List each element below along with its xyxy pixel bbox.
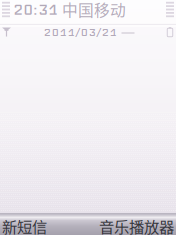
staticText: 中国移动 (62, 0, 126, 21)
staticText: 2011/03/21 (43, 25, 117, 39)
staticText: 20:31 (13, 0, 58, 19)
button[interactable]: 新短信 (0, 211, 88, 235)
button[interactable]: 音乐播放器 (88, 211, 176, 235)
staticText: 新短信 (2, 215, 47, 235)
staticText: 音乐播放器 (99, 215, 174, 235)
